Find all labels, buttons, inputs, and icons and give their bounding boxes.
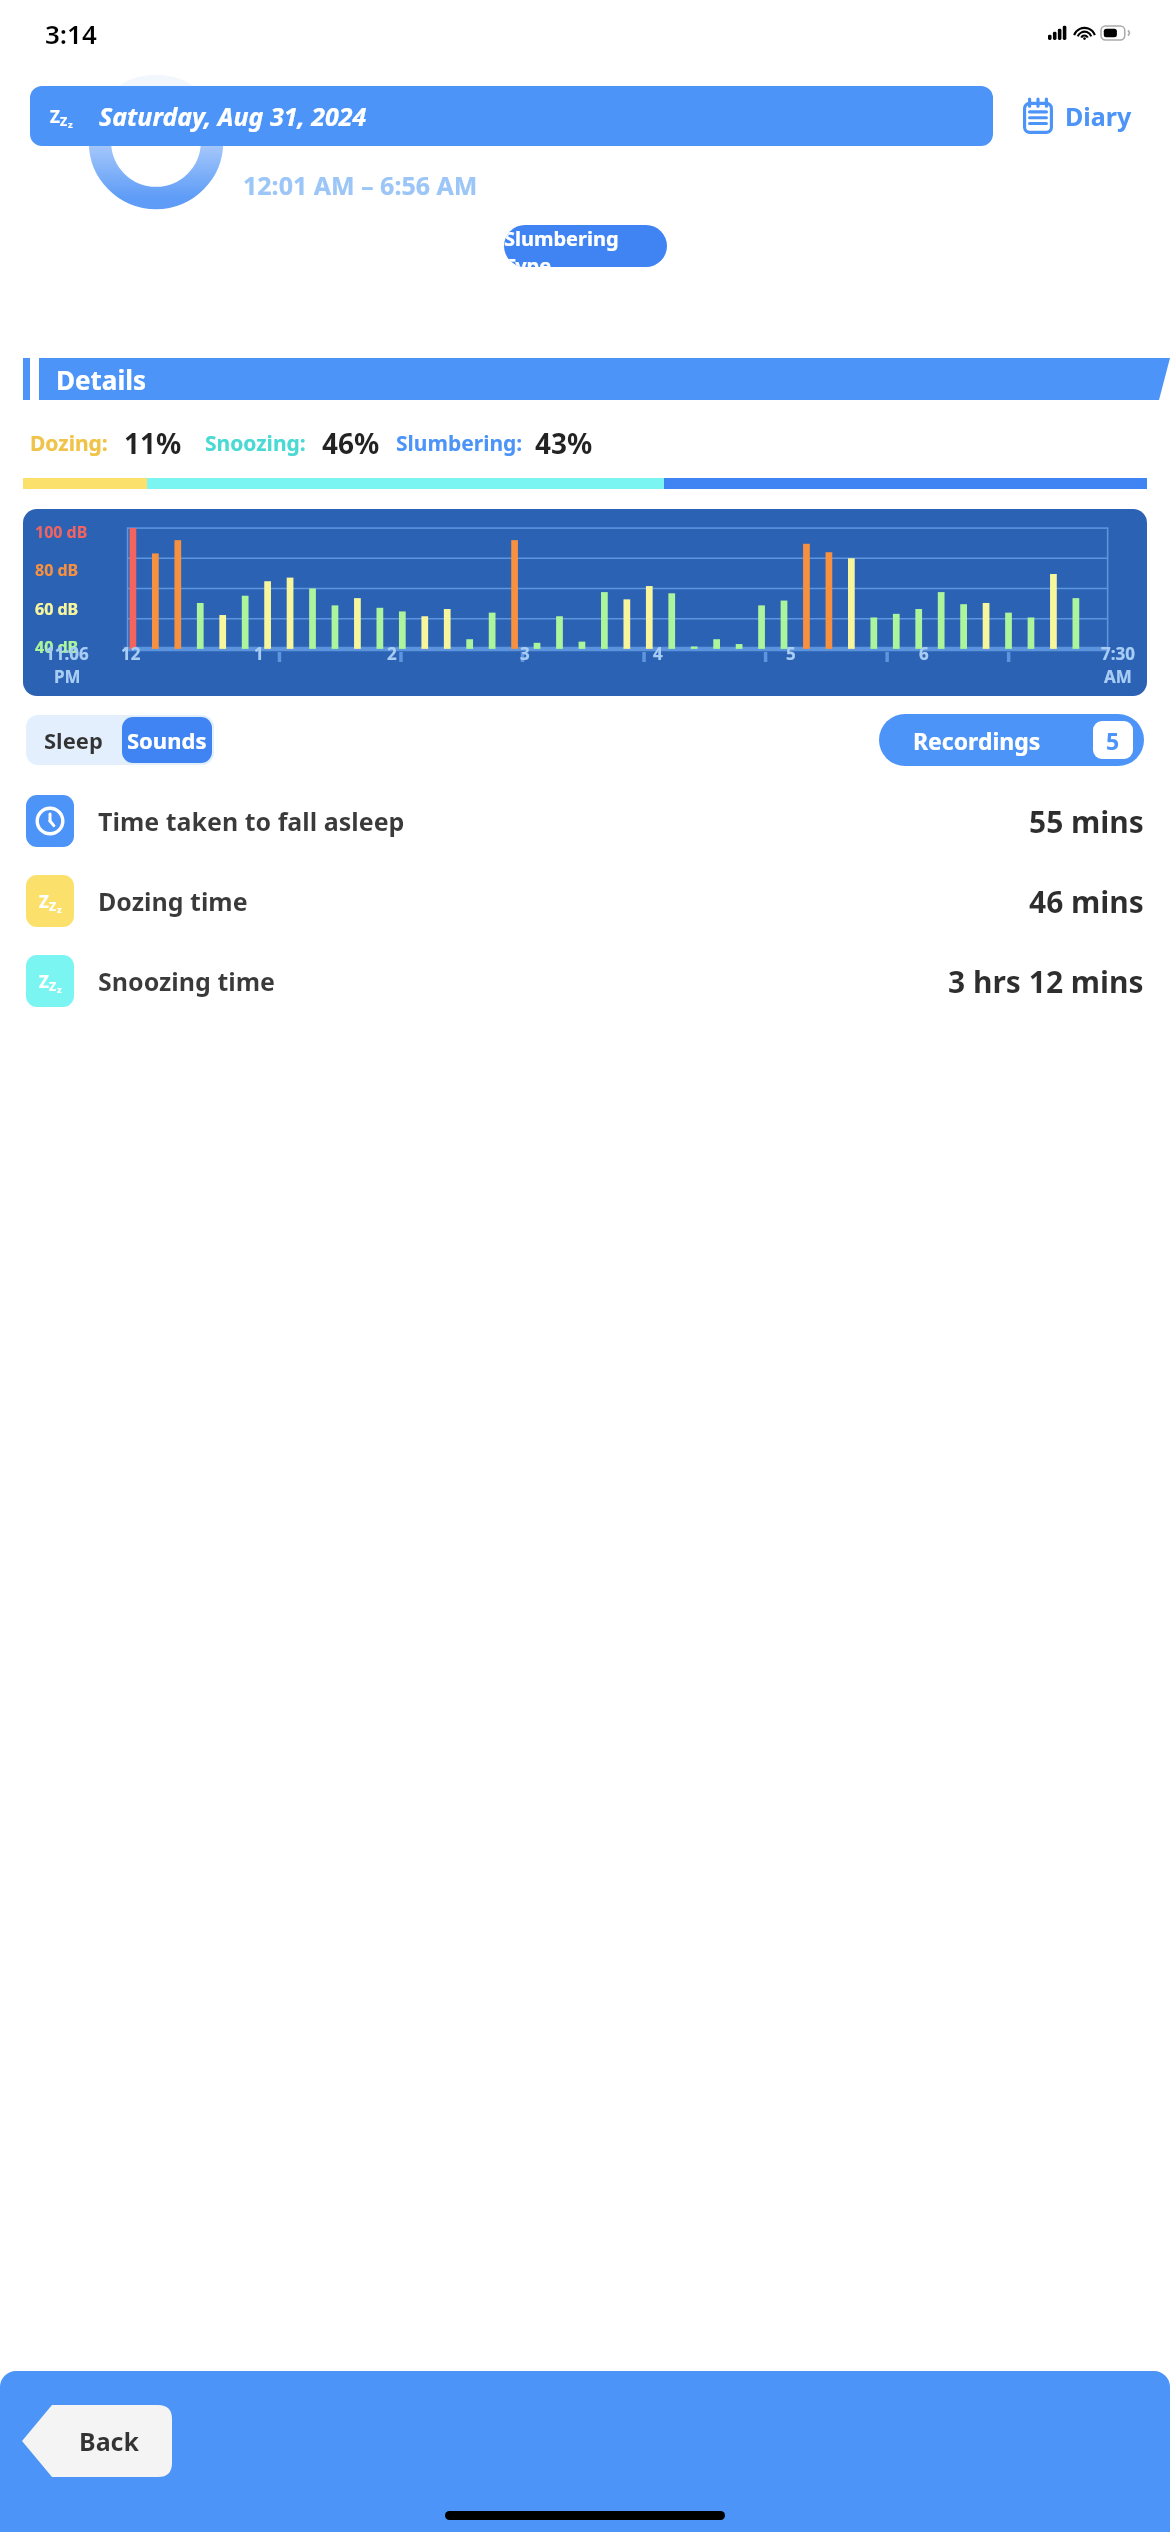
staticText: 11% [124, 424, 182, 462]
staticText: 3 [520, 642, 530, 665]
button[interactable]: Sleep [26, 715, 120, 765]
staticText: Z [49, 898, 57, 915]
staticText: z [57, 983, 62, 996]
staticText: Snoozing time [98, 964, 276, 998]
staticText: Dozing time [98, 884, 248, 918]
staticText: Z [50, 105, 60, 128]
staticText: z [57, 903, 62, 916]
staticText: Z [49, 978, 57, 995]
staticText: 55 mins [1029, 801, 1144, 842]
staticText: Saturday, Aug 31, 2024 [99, 99, 367, 133]
staticText: 80 dB [35, 559, 79, 581]
button[interactable]: Slumbering Type [504, 225, 667, 267]
staticText: Sounds [127, 725, 207, 755]
staticText: PM [54, 665, 81, 688]
staticText: 43% [535, 424, 593, 462]
button[interactable]: Recordings [879, 714, 1144, 766]
staticText: 6 [919, 642, 929, 665]
staticText: Recordings [913, 725, 1041, 756]
button[interactable]: Back [22, 2405, 172, 2477]
staticText: 1 [254, 642, 264, 665]
staticText: 60 dB [35, 598, 79, 620]
staticText: Snoozing: [205, 429, 306, 458]
staticText: Slumbering Type [504, 225, 667, 267]
button[interactable]: Sounds [122, 717, 212, 763]
button[interactable]: Diary [1023, 99, 1132, 133]
staticText: Sleep [44, 725, 103, 755]
staticText: 4 [653, 642, 663, 665]
staticText: 12:01 AM – 6:56 AM [243, 168, 478, 202]
staticText: Slumbering: [396, 429, 523, 458]
staticText: Z [39, 890, 49, 913]
staticText: 2 [387, 642, 397, 665]
button[interactable]: Z [30, 86, 993, 146]
staticText: 3:14 [45, 16, 97, 51]
staticText: 11:06 [45, 642, 89, 665]
staticText: 100 dB [35, 521, 88, 543]
staticText: Back [79, 2424, 140, 2458]
staticText: 46% [322, 424, 380, 462]
staticText: Z [60, 113, 68, 130]
staticText: Dozing: [30, 429, 108, 458]
staticText: Details [56, 362, 146, 397]
staticText: Z [39, 970, 49, 993]
staticText: AM [1104, 665, 1132, 688]
other: Diary [1023, 99, 1053, 133]
staticText: 12 [121, 642, 141, 665]
staticText: 5 [1106, 725, 1120, 756]
staticText: 46 mins [1029, 881, 1144, 922]
staticText: Time taken to fall asleep [98, 804, 405, 838]
staticText: z [68, 118, 73, 131]
button[interactable]: Time taken to fall asleep [26, 792, 1144, 850]
staticText: 7:30 [1101, 642, 1135, 665]
staticText: 3 hrs 12 mins [948, 961, 1144, 1002]
staticText: 5 [786, 642, 796, 665]
staticText: Diary [1065, 99, 1132, 133]
staticText: 40 dB [35, 636, 79, 658]
button[interactable]: Z [26, 872, 1144, 930]
button[interactable]: Z [26, 952, 1144, 1010]
